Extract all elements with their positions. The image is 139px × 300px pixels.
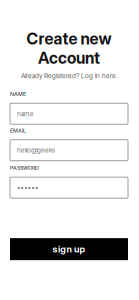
button[interactable]: name [10,103,128,124]
staticText: sign up [53,243,85,255]
button[interactable]: hello@geeks [10,140,128,161]
button[interactable]: •••••• [10,177,128,198]
staticText: PASSWORD [10,165,39,171]
staticText: name [17,110,34,118]
staticText: Account [38,48,100,68]
button[interactable]: sign up [10,238,128,260]
staticText: hello@geeks [17,146,55,154]
staticText: Already Registered? Log in here. [21,72,117,80]
staticText: NAME [10,91,26,97]
staticText: EMAIL [10,127,26,134]
staticText: Create new [26,29,111,48]
button[interactable]: Already Registered? Log in here. [10,72,128,80]
staticText: •••••• [17,184,38,192]
